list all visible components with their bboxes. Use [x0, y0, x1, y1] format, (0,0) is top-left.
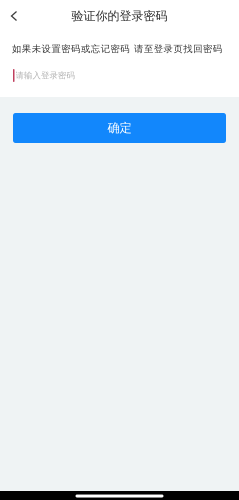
staticText: 验证你的登录密码: [71, 8, 167, 23]
staticText: 如果未设置密码或忘记密码 请至登录页找回密码: [12, 43, 222, 55]
button[interactable]: 返回: [1, 3, 27, 29]
button[interactable]: 确定: [13, 113, 226, 143]
staticText: 确定: [107, 120, 131, 136]
staticText: 请输入登录密码: [15, 70, 74, 81]
